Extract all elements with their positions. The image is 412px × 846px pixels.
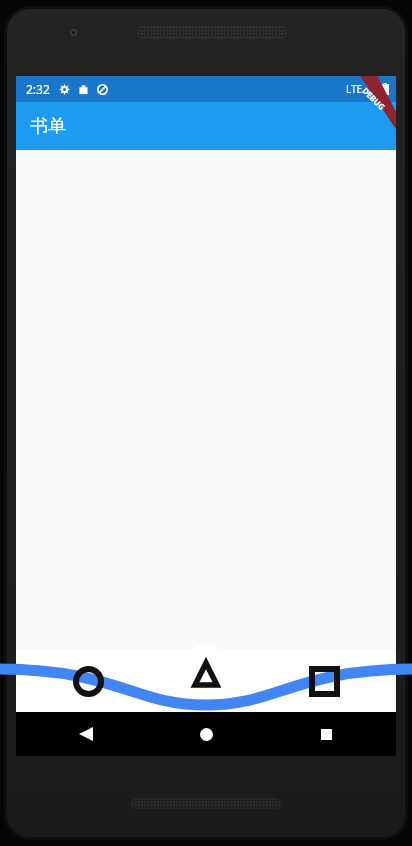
button[interactable]: Home [187, 715, 225, 753]
staticText: 书单 [30, 115, 66, 138]
staticText: LTE [346, 82, 363, 96]
button[interactable]: Square tab [300, 657, 348, 705]
button[interactable]: Add [184, 652, 228, 696]
staticText: 2:32 [26, 81, 50, 97]
button[interactable]: Circle tab [64, 657, 112, 705]
staticText: DEBUG [360, 85, 388, 112]
button[interactable]: Back [67, 715, 105, 753]
button[interactable]: Recents [307, 715, 345, 753]
